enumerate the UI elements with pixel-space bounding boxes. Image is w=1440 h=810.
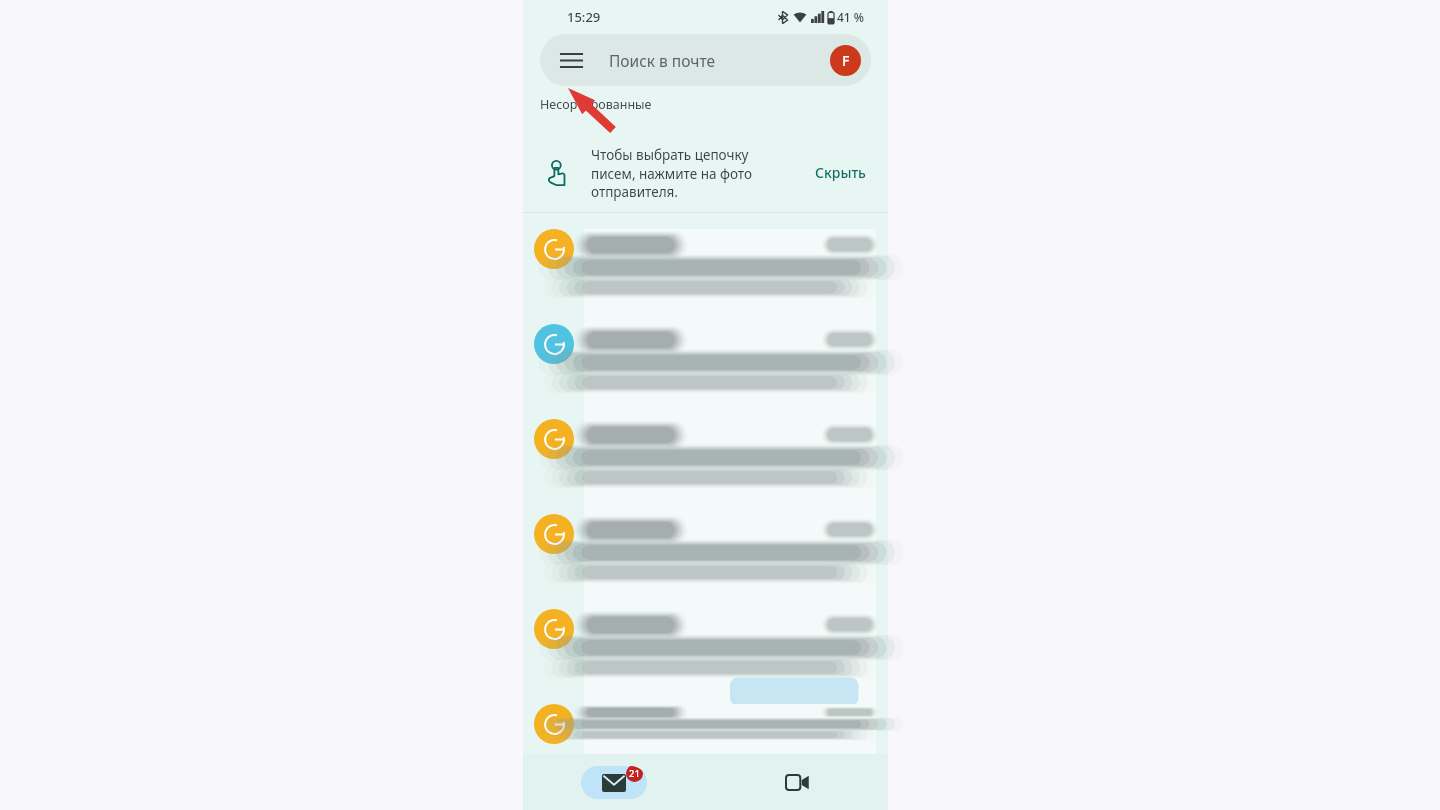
button[interactable]: Sender avatar (534, 609, 574, 649)
button[interactable]: Sender avatar (534, 324, 574, 364)
button[interactable]: Account (830, 45, 861, 76)
button[interactable]: Скрыть (815, 163, 866, 182)
button[interactable] (584, 324, 876, 419)
staticText: Скрыть (815, 163, 866, 182)
staticText: Несортированные (540, 96, 652, 113)
button[interactable]: Meet (773, 758, 821, 806)
button[interactable]: Sender avatar (534, 229, 574, 269)
staticText: Чтобы выбрать цепочку писем, нажмите на … (591, 146, 752, 200)
button[interactable]: Sender avatar (534, 514, 574, 554)
button[interactable]: Чтобы выбрать цепочку писем, нажмите на … (523, 133, 888, 212)
button[interactable]: Menu (540, 34, 871, 86)
button[interactable] (584, 419, 876, 514)
staticText: 41 % (837, 9, 865, 25)
button[interactable] (584, 229, 876, 324)
button[interactable]: Sender avatar (534, 704, 574, 744)
staticText: 21 (629, 767, 640, 780)
button[interactable] (584, 704, 876, 754)
staticText: F (842, 51, 850, 70)
button[interactable]: Mail (581, 766, 647, 799)
button[interactable]: Menu (554, 43, 588, 77)
staticText: 15:29 (567, 8, 601, 26)
button[interactable] (584, 514, 876, 609)
staticText: Поиск в почте (609, 50, 716, 71)
button[interactable]: Sender avatar (534, 419, 574, 459)
button[interactable] (584, 609, 876, 704)
